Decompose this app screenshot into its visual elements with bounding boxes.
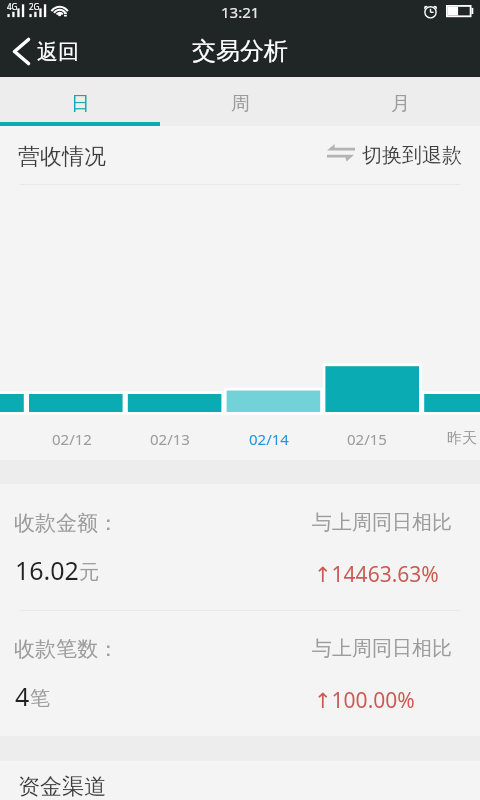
staticText: 切换到退款 xyxy=(362,143,462,168)
staticText: 与上周同日相比 xyxy=(312,636,452,661)
staticText: 资金渠道 xyxy=(18,773,106,800)
staticText: 与上周同日相比 xyxy=(312,510,452,535)
button[interactable]: 日 xyxy=(0,77,160,126)
staticText: 昨天 xyxy=(447,429,477,448)
staticText: 收款金额： xyxy=(14,510,119,536)
staticText: ↑100.00% xyxy=(314,686,415,715)
staticText: 日 xyxy=(71,92,90,116)
button[interactable]: 周 xyxy=(160,77,320,126)
staticText: 16.02 xyxy=(15,553,79,587)
staticText: 月 xyxy=(391,92,410,116)
staticText: 收款笔数： xyxy=(14,636,119,662)
button[interactable]: 资金渠道 xyxy=(18,773,106,800)
staticText: 2G xyxy=(29,1,40,12)
button[interactable]: 返回 xyxy=(0,28,93,75)
staticText: 元 xyxy=(79,560,99,585)
staticText: 周 xyxy=(231,92,250,116)
staticText: 02/14 xyxy=(249,429,289,449)
staticText: 交易分析 xyxy=(192,36,288,66)
staticText: 4G xyxy=(7,1,18,12)
staticText: ↑14463.63% xyxy=(314,560,439,589)
staticText: 02/13 xyxy=(150,429,190,449)
staticText: 返回 xyxy=(37,39,79,65)
staticText: 02/12 xyxy=(52,429,92,449)
staticText: 4 xyxy=(15,679,30,713)
staticText: 笔 xyxy=(30,686,50,711)
staticText: 营收情况 xyxy=(18,143,106,171)
button[interactable]: 月 xyxy=(320,77,480,126)
button[interactable]: 切换到退款 xyxy=(317,135,480,176)
staticText: 13:21 xyxy=(221,2,260,22)
staticText: 02/15 xyxy=(347,429,387,449)
